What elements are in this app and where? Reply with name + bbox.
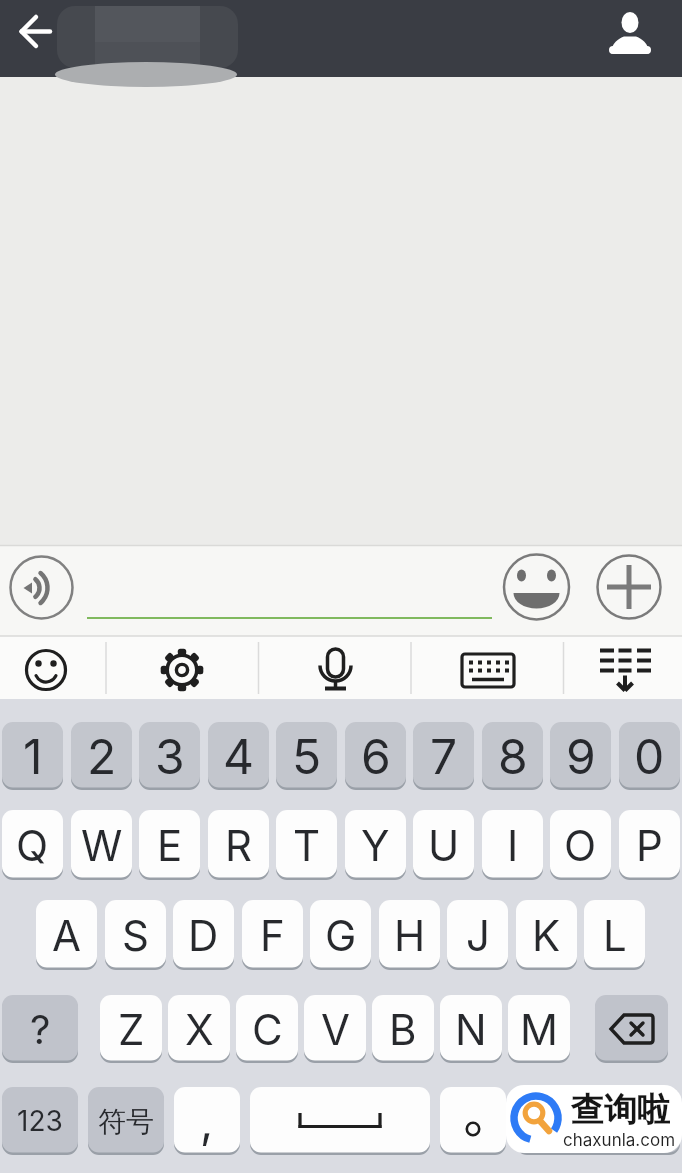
button[interactable]: T	[276, 810, 337, 880]
button[interactable]: 9	[550, 722, 611, 790]
staticText: 7	[430, 727, 458, 785]
staticText: T	[293, 820, 321, 871]
button[interactable]: ,	[174, 1087, 240, 1155]
button[interactable]	[0, 637, 136, 699]
staticText: 1	[23, 727, 43, 785]
button[interactable]: G	[310, 900, 371, 970]
button[interactable]	[8, 8, 64, 64]
staticText: Q	[16, 820, 49, 871]
staticText: G	[325, 910, 357, 961]
staticText: 6	[361, 727, 391, 785]
button[interactable]: 8	[482, 722, 543, 790]
button[interactable]: R	[208, 810, 269, 880]
button[interactable]: F	[242, 900, 303, 970]
button[interactable]: 0	[619, 722, 680, 790]
button[interactable]	[10, 556, 73, 619]
button[interactable]	[600, 8, 670, 68]
staticText: B	[389, 1004, 417, 1055]
staticText: F	[260, 910, 285, 961]
button[interactable]: Y	[345, 810, 406, 880]
button[interactable]: 1	[2, 722, 63, 790]
button[interactable]: P	[619, 810, 680, 880]
staticText: M	[520, 1004, 558, 1055]
button[interactable]: H	[379, 900, 440, 970]
staticText: P	[636, 820, 663, 871]
staticText: O	[564, 820, 597, 871]
button[interactable]: O	[550, 810, 611, 880]
button[interactable]	[273, 637, 409, 699]
button[interactable]: I	[482, 810, 543, 880]
button[interactable]: 4	[208, 722, 269, 790]
staticText: X	[185, 1004, 214, 1055]
button[interactable]	[136, 637, 272, 699]
button[interactable]: 7	[413, 722, 474, 790]
staticText: U	[428, 820, 460, 871]
staticText: 0	[634, 727, 665, 785]
button[interactable]	[440, 1087, 506, 1155]
button[interactable]: W	[71, 810, 132, 880]
staticText: E	[157, 820, 183, 871]
button[interactable]	[504, 554, 569, 619]
button[interactable]: 5	[276, 722, 337, 790]
staticText: D	[188, 910, 219, 961]
staticText: A	[52, 910, 81, 961]
button[interactable]: V	[304, 995, 366, 1063]
button[interactable]: 符号	[88, 1087, 164, 1155]
staticText: K	[532, 910, 561, 961]
button[interactable]	[546, 637, 682, 699]
button[interactable]: 2	[71, 722, 132, 790]
button[interactable]	[516, 1087, 680, 1155]
button[interactable]: L	[584, 900, 645, 970]
staticText: 9	[566, 727, 596, 785]
staticText: C	[252, 1004, 283, 1055]
staticText: R	[225, 820, 253, 871]
button[interactable]: 123	[2, 1087, 78, 1155]
staticText: 123	[17, 1104, 63, 1138]
button[interactable]: B	[372, 995, 434, 1063]
staticText: 2	[87, 727, 117, 785]
staticText: 3	[155, 727, 185, 785]
staticText: ,	[200, 1093, 214, 1149]
staticText: V	[321, 1004, 350, 1055]
button[interactable]: E	[139, 810, 200, 880]
button[interactable]: Z	[100, 995, 162, 1063]
button[interactable]: 6	[345, 722, 406, 790]
staticText: chaxunla.com	[563, 1130, 676, 1151]
staticText: H	[394, 910, 426, 961]
staticText: Z	[118, 1004, 145, 1055]
staticText: W	[81, 820, 123, 871]
button[interactable]	[596, 554, 661, 619]
staticText: Y	[361, 820, 390, 871]
button[interactable]: J	[447, 900, 508, 970]
button[interactable]: K	[516, 900, 577, 970]
staticText: N	[455, 1004, 487, 1055]
button[interactable]	[250, 1087, 430, 1155]
staticText: 符号	[98, 1104, 154, 1139]
staticText: S	[122, 910, 149, 961]
button[interactable]: D	[173, 900, 234, 970]
button[interactable]: X	[168, 995, 230, 1063]
staticText: ?	[30, 1005, 51, 1053]
button[interactable]	[409, 637, 545, 699]
button[interactable]: N	[440, 995, 502, 1063]
staticText: 5	[292, 727, 322, 785]
button[interactable]	[595, 995, 668, 1063]
staticText: 8	[498, 727, 528, 785]
button[interactable]: 3	[139, 722, 200, 790]
button[interactable]: S	[105, 900, 166, 970]
button[interactable]: M	[508, 995, 570, 1063]
button[interactable]: C	[236, 995, 298, 1063]
staticText: J	[466, 910, 490, 961]
staticText: 4	[223, 727, 255, 785]
button[interactable]: Q	[2, 810, 63, 880]
button[interactable]: U	[413, 810, 474, 880]
staticText: I	[507, 820, 519, 871]
staticText: L	[603, 910, 627, 961]
staticText: 查询啦	[571, 1089, 670, 1129]
button[interactable]: A	[36, 900, 97, 970]
button[interactable]: ?	[2, 995, 78, 1063]
